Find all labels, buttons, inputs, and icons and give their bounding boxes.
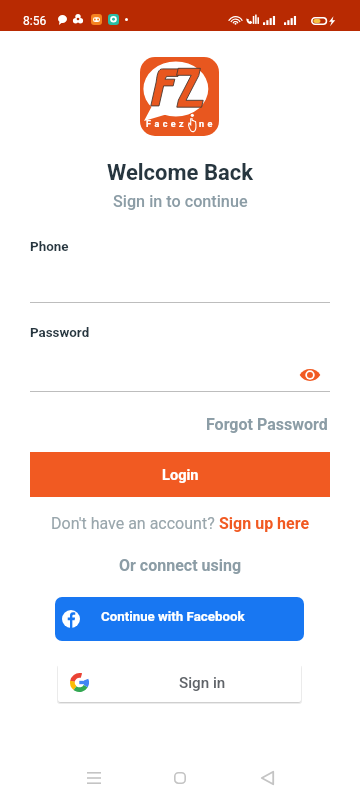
button[interactable]: Sign in xyxy=(58,663,301,702)
staticText: Continue with Facebook xyxy=(101,609,245,625)
button[interactable]: Home xyxy=(160,758,200,798)
staticText: Or connect using xyxy=(119,556,242,575)
staticText: Sign in to continue xyxy=(113,192,248,211)
button[interactable]: Forgot Password xyxy=(206,415,328,434)
staticText: n e xyxy=(199,119,213,130)
button[interactable]: Login xyxy=(30,452,330,497)
staticText: Login xyxy=(162,466,199,483)
staticText: Sign up here xyxy=(219,514,310,533)
button[interactable]: Continue with Facebook xyxy=(55,597,304,641)
button[interactable]: Show password xyxy=(296,361,324,389)
staticText: 8:56 xyxy=(23,14,47,28)
staticText: Password xyxy=(30,325,90,341)
staticText: Phone xyxy=(30,239,69,255)
staticText: Sign in xyxy=(179,674,226,692)
button[interactable]: Recent apps xyxy=(74,758,114,798)
button[interactable]: Sign up here xyxy=(219,514,310,533)
button[interactable]: Back xyxy=(247,758,287,798)
staticText: F a c e z xyxy=(146,119,185,130)
staticText: Forgot Password xyxy=(206,415,328,434)
staticText: Don't have an account? xyxy=(51,514,219,533)
staticText: Welcome Back xyxy=(107,160,253,186)
